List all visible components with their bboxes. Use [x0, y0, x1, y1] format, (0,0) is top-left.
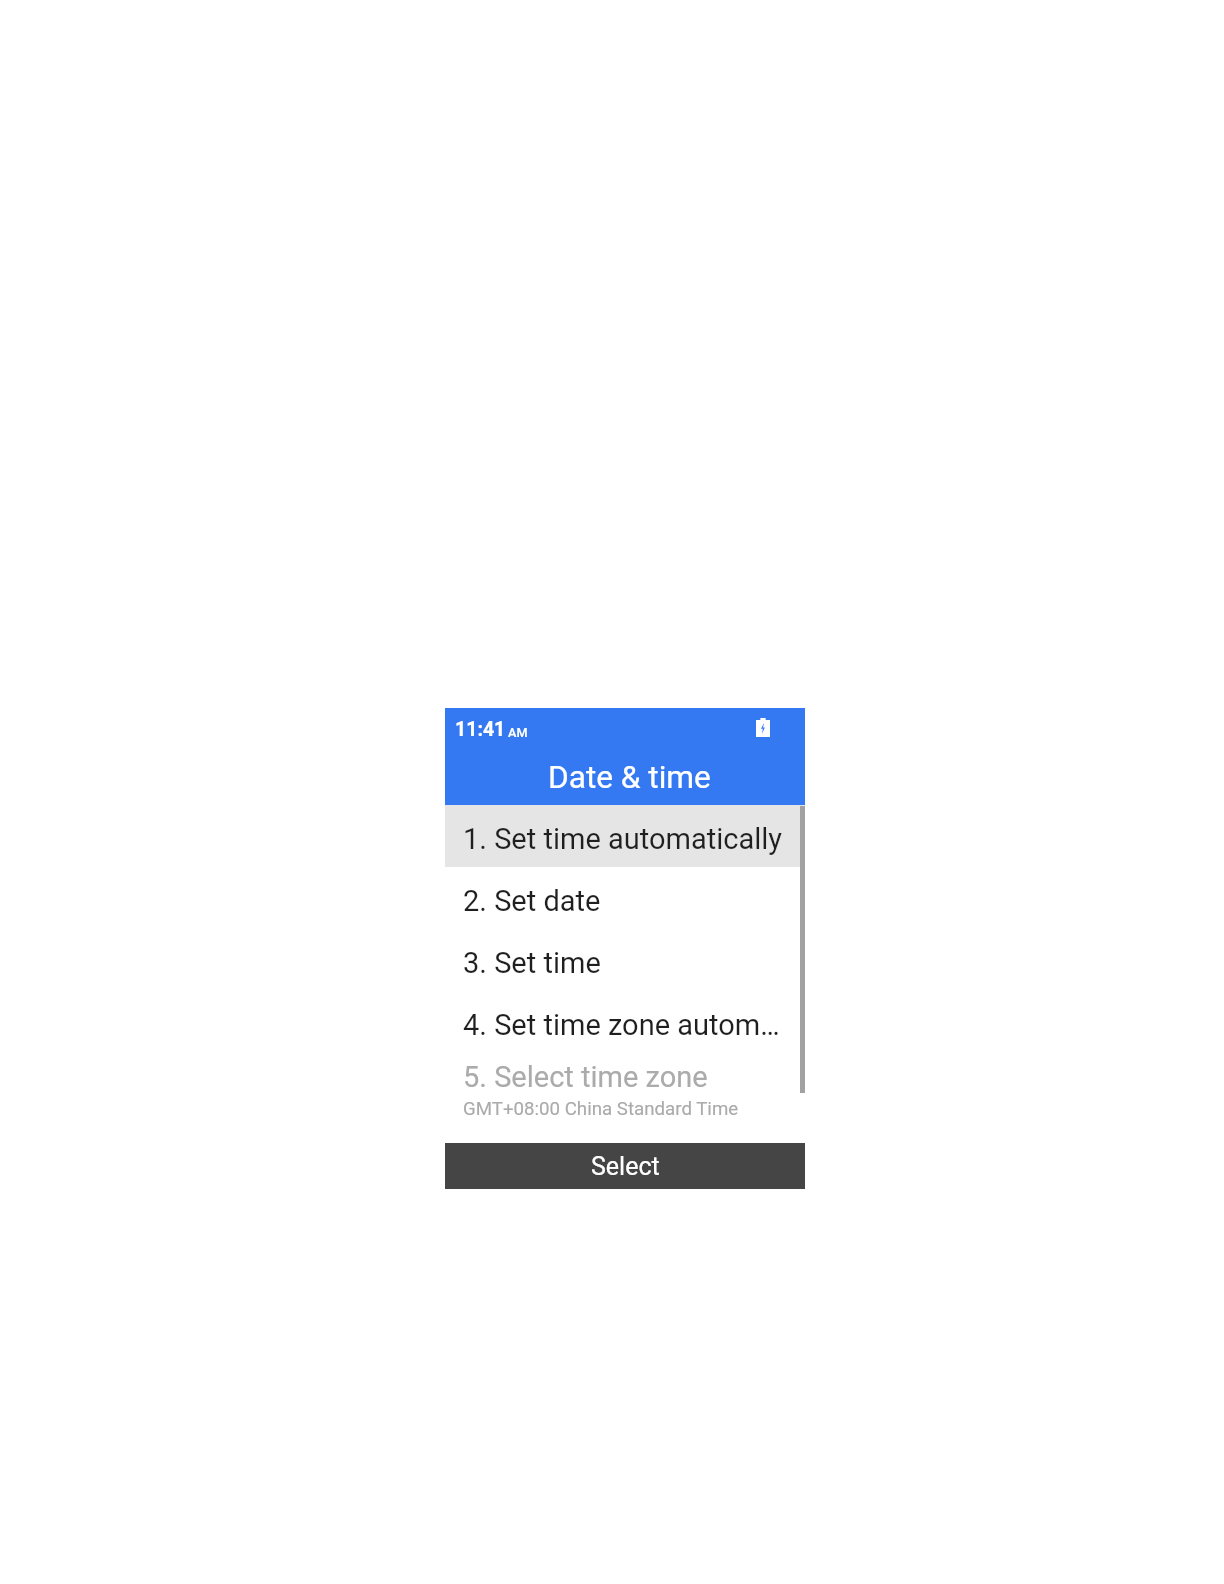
button[interactable]: 4. Set time zone autom… — [445, 991, 805, 1053]
staticText: 11:41 — [455, 718, 506, 741]
staticText: 1. Set time automatically — [463, 822, 782, 856]
staticText: 4. Set time zone autom… — [463, 1008, 780, 1042]
staticText: Date & time — [548, 759, 711, 796]
button[interactable]: 3. Set time — [445, 929, 805, 991]
button[interactable]: Select — [445, 1143, 805, 1189]
staticText: 3. Set time — [463, 946, 601, 980]
staticText: GMT+08:00 China Standard Time — [463, 1098, 739, 1119]
staticText: 2. Set date — [463, 884, 601, 918]
staticText: Select — [591, 1152, 660, 1181]
staticText: AM — [508, 725, 528, 740]
button[interactable]: 1. Set time automatically — [445, 805, 805, 867]
button[interactable]: 2. Set date — [445, 867, 805, 929]
other: Battery charging — [756, 718, 770, 737]
button[interactable]: 5. Select time zone — [445, 1053, 805, 1115]
staticText: 5. Select time zone — [463, 1060, 708, 1094]
